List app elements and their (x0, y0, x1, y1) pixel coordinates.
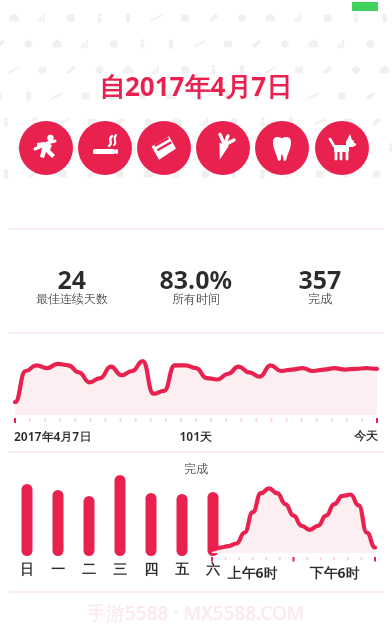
button[interactable]: Habit statistics (0, 0, 392, 629)
